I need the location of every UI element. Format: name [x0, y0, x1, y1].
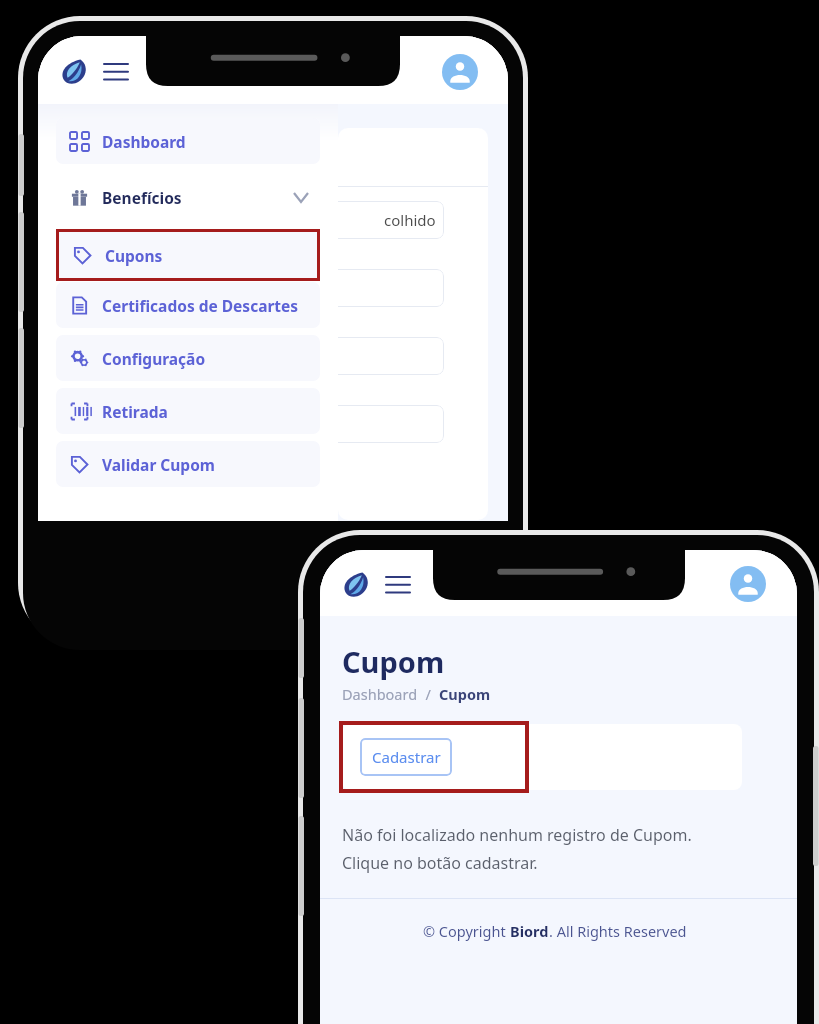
staticText: Cupom	[342, 642, 445, 681]
button[interactable]: Cadastrar	[360, 738, 452, 776]
staticText: Clique no botão cadastrar.	[342, 852, 538, 874]
staticText: Biord	[510, 921, 549, 941]
button[interactable]: Configuração	[56, 335, 320, 381]
staticText: Cadastrar	[372, 747, 441, 767]
staticText: © Copyright	[423, 921, 510, 941]
staticText: /	[418, 684, 439, 704]
staticText: Certificados de Descartes	[102, 295, 299, 316]
staticText: Benefícios	[102, 187, 182, 208]
staticText: Cupom	[439, 684, 491, 704]
staticText: Configuração	[102, 348, 206, 369]
button[interactable]: Biord logo	[56, 54, 90, 88]
button[interactable]: Certificados de Descartes	[56, 282, 320, 328]
button[interactable]: Retirada	[56, 388, 320, 434]
button[interactable]: Dashboard	[342, 684, 418, 704]
button[interactable]: Cupons	[59, 232, 317, 278]
staticText: Dashboard	[102, 131, 186, 152]
staticText: Não foi localizado nenhum registro de Cu…	[342, 824, 692, 846]
button[interactable]: Benefícios	[56, 174, 320, 220]
button[interactable]: Validar Cupom	[56, 441, 320, 487]
button[interactable]: Biord logo	[338, 567, 372, 601]
button[interactable]: Menu	[100, 56, 132, 88]
button[interactable]: Profile	[442, 54, 478, 90]
staticText: colhido	[384, 210, 436, 230]
button[interactable]: Menu	[382, 569, 414, 601]
button[interactable]: Dashboard	[56, 118, 320, 164]
staticText: Validar Cupom	[102, 454, 215, 475]
staticText: Cupons	[105, 245, 163, 266]
staticText: . All Rights Reserved	[549, 921, 687, 941]
staticText: Retirada	[102, 401, 168, 422]
button[interactable]: Profile	[730, 566, 766, 602]
